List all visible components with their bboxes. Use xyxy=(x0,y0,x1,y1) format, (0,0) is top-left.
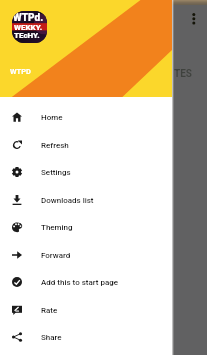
button[interactable]: Home xyxy=(0,103,172,131)
staticText: WTPd. xyxy=(13,12,44,24)
button[interactable]: WTPd. xyxy=(0,0,172,97)
staticText: Downloads list xyxy=(41,196,94,205)
button[interactable]: Share xyxy=(0,323,172,351)
button[interactable]: Add this to start page xyxy=(0,268,172,296)
staticText: TEcHY. xyxy=(14,31,40,40)
staticText: Share xyxy=(41,333,62,342)
staticText: Settings xyxy=(41,168,71,177)
button[interactable]: Refresh xyxy=(0,131,172,159)
staticText: Theming xyxy=(41,223,73,232)
staticText: WTPD xyxy=(10,67,31,76)
staticText: Forward xyxy=(41,251,71,260)
staticText: Home xyxy=(41,113,63,122)
button[interactable]: More options xyxy=(186,9,202,25)
staticText: Rate xyxy=(41,306,58,315)
button[interactable]: Downloads list xyxy=(0,186,172,214)
button[interactable]: Rate xyxy=(0,296,172,324)
staticText: WEKKY. xyxy=(14,23,43,32)
button[interactable]: Forward xyxy=(0,241,172,269)
button[interactable]: Theming xyxy=(0,213,172,241)
button[interactable]: Settings xyxy=(0,158,172,186)
staticText: Refresh xyxy=(41,141,69,150)
staticText: Add this to start page xyxy=(41,278,119,287)
staticText: TES xyxy=(174,68,192,80)
